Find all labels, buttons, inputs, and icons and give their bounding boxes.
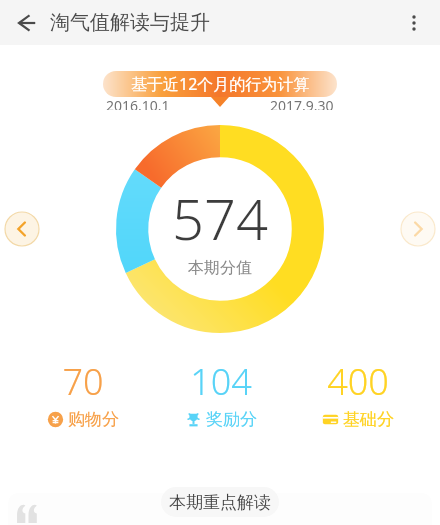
- button[interactable]: 本期重点解读: [161, 487, 279, 517]
- staticText: 基于近12个月的行为计算: [131, 73, 310, 95]
- staticText: 本期分值: [188, 258, 252, 278]
- staticText: 购物分: [68, 409, 119, 430]
- staticText: 574: [172, 180, 268, 256]
- button[interactable]: Previous: [4, 211, 40, 247]
- staticText: 基础分: [343, 409, 394, 430]
- button[interactable]: Back: [6, 3, 46, 43]
- staticText: 本期重点解读: [169, 492, 271, 513]
- button[interactable]: Next: [400, 211, 436, 247]
- button[interactable]: 400: [289, 357, 426, 430]
- staticText: 2016.10.1: [106, 96, 170, 110]
- staticText: 400: [327, 357, 389, 406]
- staticText: 70: [62, 357, 104, 406]
- staticText: 104: [190, 357, 252, 406]
- button[interactable]: More options: [394, 3, 434, 43]
- staticText: 奖励分: [206, 409, 257, 430]
- button[interactable]: 70: [14, 357, 152, 430]
- button[interactable]: 104: [152, 357, 289, 430]
- staticText: 2017.9.30: [270, 96, 334, 110]
- staticText: 淘气值解读与提升: [50, 10, 210, 35]
